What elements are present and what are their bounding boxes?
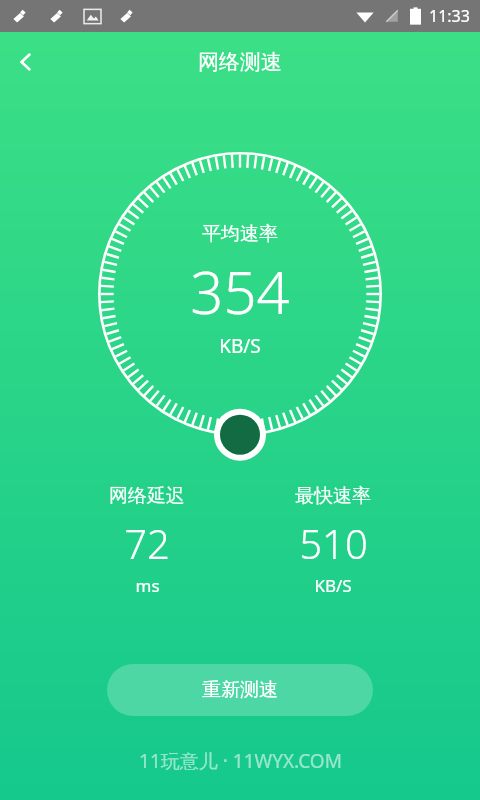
- staticText: KB/S: [219, 333, 261, 359]
- staticText: 重新测速: [202, 678, 278, 702]
- staticText: ms: [135, 574, 160, 597]
- staticText: 11:33: [429, 5, 470, 27]
- staticText: 510: [299, 516, 368, 570]
- staticText: KB/S: [314, 574, 352, 597]
- staticText: 最快速率: [295, 484, 371, 508]
- staticText: 网络测速: [198, 49, 282, 75]
- staticText: 11玩意儿 · 11WYX.COM: [139, 748, 342, 774]
- button[interactable]: 重新测速: [107, 664, 373, 716]
- button[interactable]: Back: [0, 36, 52, 88]
- staticText: 72: [124, 516, 170, 570]
- staticText: 354: [190, 252, 290, 331]
- staticText: 网络延迟: [109, 484, 185, 508]
- staticText: 平均速率: [202, 222, 278, 246]
